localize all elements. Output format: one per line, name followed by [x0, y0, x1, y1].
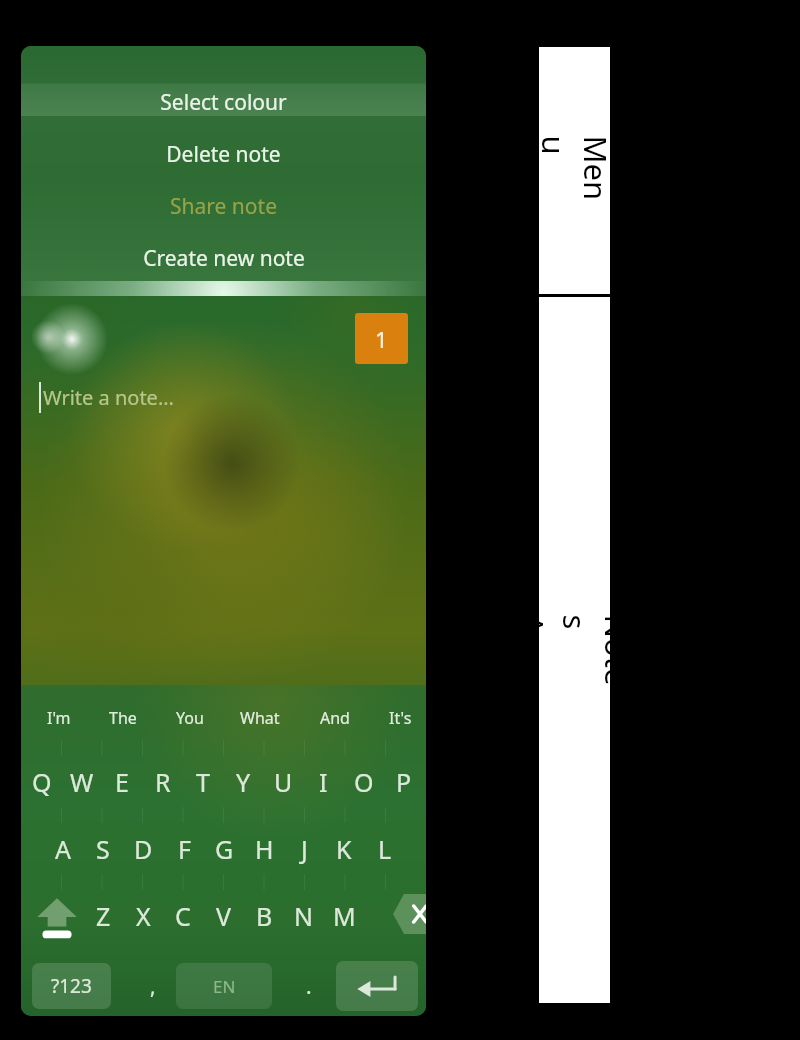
staticText: Menu [532, 135, 616, 206]
staticText: K [336, 832, 352, 866]
button[interactable]: You [166, 705, 214, 731]
button[interactable]: A [45, 826, 81, 872]
button[interactable]: The [99, 705, 147, 731]
staticText: T [196, 765, 210, 799]
button[interactable]: Write a note... [43, 384, 174, 411]
staticText: D [134, 832, 153, 866]
button[interactable]: EN [176, 963, 272, 1009]
button[interactable]: Shift caps lock [31, 890, 83, 942]
staticText: Create new note [143, 244, 305, 273]
staticText: What [240, 707, 280, 729]
staticText: N [294, 899, 314, 933]
staticText: You [176, 707, 204, 729]
button[interactable]: T [185, 759, 221, 805]
button[interactable]: Y [225, 759, 261, 805]
staticText: P [396, 765, 412, 799]
button[interactable]: I'm [35, 705, 83, 731]
button[interactable]: K [326, 826, 362, 872]
staticText: And [320, 707, 350, 729]
staticText: G [215, 832, 234, 866]
button[interactable]: S [85, 826, 121, 872]
button[interactable]: V [206, 893, 242, 939]
button[interactable]: H [246, 826, 282, 872]
staticText: , [150, 972, 156, 1001]
staticText: R [155, 765, 171, 799]
button[interactable]: U [265, 759, 301, 805]
button[interactable]: , [133, 963, 173, 1009]
button[interactable]: R [145, 759, 181, 805]
button[interactable]: It's [376, 705, 424, 731]
button[interactable]: G [206, 826, 242, 872]
staticText: Write a note... [43, 384, 174, 411]
button[interactable]: N [286, 893, 322, 939]
button[interactable]: Q [24, 759, 60, 805]
button[interactable]: D [125, 826, 161, 872]
staticText: Q [32, 765, 52, 799]
staticText: ?123 [51, 973, 92, 999]
staticText: Notes App [511, 614, 637, 685]
button[interactable]: Create new note [21, 238, 426, 278]
staticText: X [136, 899, 151, 933]
button[interactable]: Share note [21, 186, 426, 226]
button[interactable]: M [326, 893, 362, 939]
staticText: B [256, 899, 273, 933]
button[interactable]: Delete note [21, 134, 426, 174]
button[interactable]: C [165, 893, 201, 939]
staticText: C [175, 899, 191, 933]
staticText: . [306, 972, 312, 1001]
staticText: V [216, 899, 232, 933]
staticText: Select colour [160, 88, 287, 117]
button[interactable]: . [289, 963, 329, 1009]
button[interactable]: B [246, 893, 282, 939]
button[interactable]: ?123 [32, 963, 111, 1009]
staticText: EN [213, 975, 236, 998]
button[interactable]: What [236, 705, 284, 731]
staticText: J [301, 832, 308, 866]
button[interactable]: O [346, 759, 382, 805]
button[interactable]: 1 [355, 313, 408, 364]
button[interactable]: X [125, 893, 161, 939]
staticText: I [319, 765, 328, 799]
staticText: 1 [375, 324, 388, 354]
button[interactable]: Backspace [393, 894, 426, 934]
staticText: E [115, 765, 129, 799]
staticText: O [354, 765, 374, 799]
staticText: Z [96, 899, 111, 933]
button[interactable]: P [386, 759, 422, 805]
staticText: A [55, 832, 71, 866]
staticText: Delete note [166, 140, 281, 169]
staticText: It's [389, 707, 412, 729]
staticText: H [255, 832, 274, 866]
staticText: Share note [170, 192, 277, 221]
staticText: M [333, 899, 356, 933]
button[interactable]: W [64, 759, 100, 805]
staticText: W [70, 765, 94, 799]
staticText: L [378, 832, 392, 866]
staticText: I'm [47, 707, 71, 729]
button[interactable]: And [311, 705, 359, 731]
button[interactable]: F [166, 826, 202, 872]
button[interactable]: L [367, 826, 403, 872]
button[interactable]: Enter [336, 961, 418, 1011]
button[interactable]: I [305, 759, 341, 805]
staticText: F [178, 832, 191, 866]
button[interactable]: Z [85, 893, 121, 939]
staticText: U [274, 765, 293, 799]
staticText: S [96, 832, 110, 866]
staticText: Y [236, 765, 251, 799]
staticText: The [109, 707, 137, 729]
button[interactable]: E [104, 759, 140, 805]
button[interactable]: Select colour [21, 82, 426, 122]
button[interactable]: J [286, 826, 322, 872]
